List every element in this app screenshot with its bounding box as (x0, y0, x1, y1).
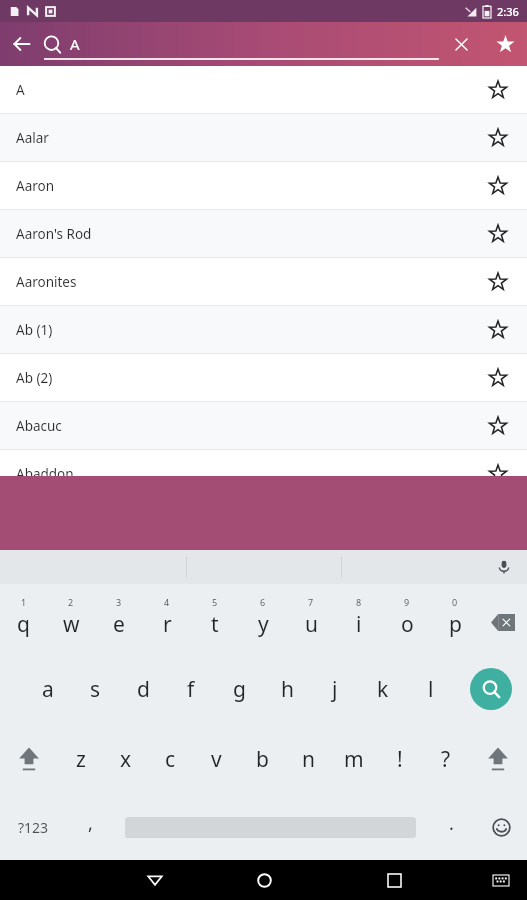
button[interactable]: f (167, 654, 215, 724)
button[interactable]: Abaddon (0, 450, 527, 498)
staticText: ! (397, 745, 403, 774)
staticText: y (258, 610, 269, 639)
button[interactable]: Aaron's Rod (0, 210, 527, 258)
button[interactable]: 6 (239, 584, 287, 654)
button[interactable]: Ab (2) (0, 354, 527, 402)
button[interactable]: Clear (439, 22, 483, 66)
button[interactable]: Voice input (491, 554, 517, 580)
staticText: u (305, 610, 318, 639)
staticText: 9 (404, 596, 410, 608)
staticText: l (428, 675, 434, 704)
button[interactable]: c (148, 724, 193, 794)
button[interactable]: Aaron (0, 162, 527, 210)
button[interactable]: Aaronites (0, 258, 527, 306)
button[interactable]: ?123 (0, 794, 66, 860)
button[interactable]: Bookmark Abacuc (483, 411, 513, 441)
button[interactable]: Home (244, 860, 284, 900)
staticText: o (401, 610, 414, 639)
button[interactable]: Abacuc (0, 402, 527, 450)
staticText: q (17, 610, 30, 639)
staticText: j (332, 675, 338, 704)
button[interactable]: 0 (431, 584, 479, 654)
button[interactable]: s (71, 654, 119, 724)
staticText: b (256, 745, 269, 774)
staticText: w (63, 610, 80, 639)
button[interactable]: a (24, 654, 71, 724)
staticText: v (211, 745, 222, 774)
button[interactable]: Search (455, 654, 527, 724)
staticText: Aalar (16, 129, 49, 147)
staticText: . (449, 811, 454, 836)
button[interactable]: Bookmark A (483, 75, 513, 105)
button[interactable]: 9 (383, 584, 431, 654)
staticText: A (70, 34, 80, 54)
button[interactable]: Backspace (479, 584, 527, 654)
staticText: k (377, 675, 389, 704)
staticText: Aaronites (16, 273, 77, 291)
button[interactable]: Bookmark Ab (2) (483, 363, 513, 393)
button[interactable]: 3 (95, 584, 143, 654)
button[interactable]: A (44, 22, 439, 66)
button[interactable]: h (263, 654, 311, 724)
button[interactable]: Aalar (0, 114, 527, 162)
button[interactable]: Back (0, 22, 44, 66)
staticText: 2 (68, 596, 74, 608)
button[interactable]: Bookmark Aaron's Rod (483, 219, 513, 249)
staticText: m (344, 745, 364, 774)
button[interactable]: k (359, 654, 407, 724)
staticText: 8 (356, 596, 362, 608)
button[interactable]: 4 (143, 584, 191, 654)
staticText: Aaron's Rod (16, 225, 92, 243)
staticText: 7 (308, 596, 314, 608)
staticText: 1 (21, 596, 27, 608)
button[interactable]: Bookmark Aaron (483, 171, 513, 201)
button[interactable]: 2 (47, 584, 95, 654)
button[interactable]: l (407, 654, 455, 724)
button[interactable]: g (215, 654, 263, 724)
staticText: d (137, 675, 150, 704)
button[interactable]: v (193, 724, 239, 794)
button[interactable]: Switch keyboard (487, 866, 515, 894)
button[interactable]: A (0, 66, 527, 114)
button[interactable]: d (119, 654, 167, 724)
button[interactable]: . (427, 794, 475, 860)
staticText: f (187, 675, 195, 704)
button[interactable]: Recents (374, 860, 414, 900)
button[interactable]: x (103, 724, 148, 794)
button[interactable]: Shift (0, 724, 58, 794)
button[interactable]: ! (377, 724, 423, 794)
button[interactable]: Bookmark Aalar (483, 123, 513, 153)
button[interactable]: 5 (191, 584, 239, 654)
staticText: 5 (212, 596, 218, 608)
button[interactable]: m (331, 724, 377, 794)
staticText: h (281, 675, 294, 704)
button[interactable]: Bookmark Ab (1) (483, 315, 513, 345)
button[interactable]: b (239, 724, 285, 794)
staticText: A (16, 81, 25, 99)
button[interactable]: 8 (335, 584, 383, 654)
staticText: ? (441, 745, 451, 774)
staticText: ?123 (18, 818, 49, 837)
button[interactable]: j (311, 654, 359, 724)
button[interactable]: 1 (0, 584, 47, 654)
button[interactable]: Bookmark Aaronites (483, 267, 513, 297)
button[interactable]: Favorites (483, 22, 527, 66)
button[interactable]: z (58, 724, 103, 794)
staticText: s (90, 675, 101, 704)
button[interactable]: Emoji (475, 794, 527, 860)
button[interactable]: , (66, 794, 114, 860)
staticText: Ab (2) (16, 369, 53, 387)
staticText: g (233, 675, 246, 704)
button[interactable]: Space (114, 794, 427, 860)
button[interactable]: Bookmark Abaddon (483, 459, 513, 489)
staticText: 6 (260, 596, 266, 608)
button[interactable]: Ab (1) (0, 306, 527, 354)
staticText: i (356, 610, 362, 639)
button[interactable]: ? (423, 724, 469, 794)
button[interactable]: Back (135, 860, 175, 900)
button[interactable]: 7 (287, 584, 335, 654)
button[interactable]: n (285, 724, 331, 794)
button[interactable]: Shift (469, 724, 527, 794)
